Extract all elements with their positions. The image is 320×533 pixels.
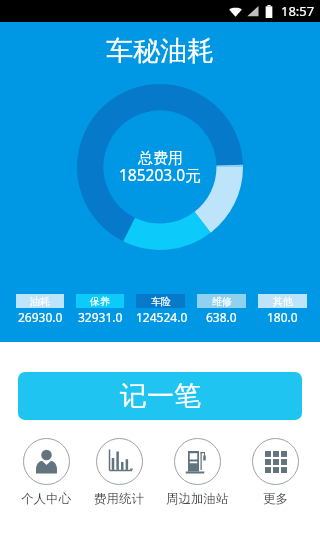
button[interactable]: Expense statistics xyxy=(92,438,146,507)
staticText: 记一笔 xyxy=(120,379,201,413)
staticText: 油耗 xyxy=(30,295,50,308)
staticText: 周边加油站 xyxy=(166,491,229,507)
button[interactable]: More xyxy=(250,438,301,507)
staticText: 更多 xyxy=(263,491,288,507)
other: Nearby gas stations xyxy=(185,449,210,474)
other: Personal center xyxy=(34,449,59,474)
staticText: 保养 xyxy=(90,295,110,308)
staticText: 维修 xyxy=(212,295,232,308)
staticText: 个人中心 xyxy=(21,491,71,507)
staticText: 180.0 xyxy=(267,309,298,325)
button[interactable]: Nearby gas stations xyxy=(164,438,231,507)
button[interactable]: Personal center xyxy=(19,438,73,507)
staticText: 124524.0 xyxy=(136,309,185,325)
staticText: 总费用 xyxy=(138,149,183,168)
staticText: 其他 xyxy=(273,295,293,308)
staticText: 185203.0元 xyxy=(119,164,201,185)
staticText: 18:57 xyxy=(281,2,315,20)
button[interactable]: 记一笔 xyxy=(18,372,302,420)
staticText: 638.0 xyxy=(206,309,237,325)
staticText: 车秘油耗 xyxy=(106,34,214,68)
staticText: 32931.0 xyxy=(78,309,123,325)
other: Expense statistics xyxy=(107,449,132,474)
other: More xyxy=(265,451,287,473)
staticText: 26930.0 xyxy=(18,309,63,325)
staticText: 车险 xyxy=(151,295,171,308)
staticText: 费用统计 xyxy=(94,491,144,507)
